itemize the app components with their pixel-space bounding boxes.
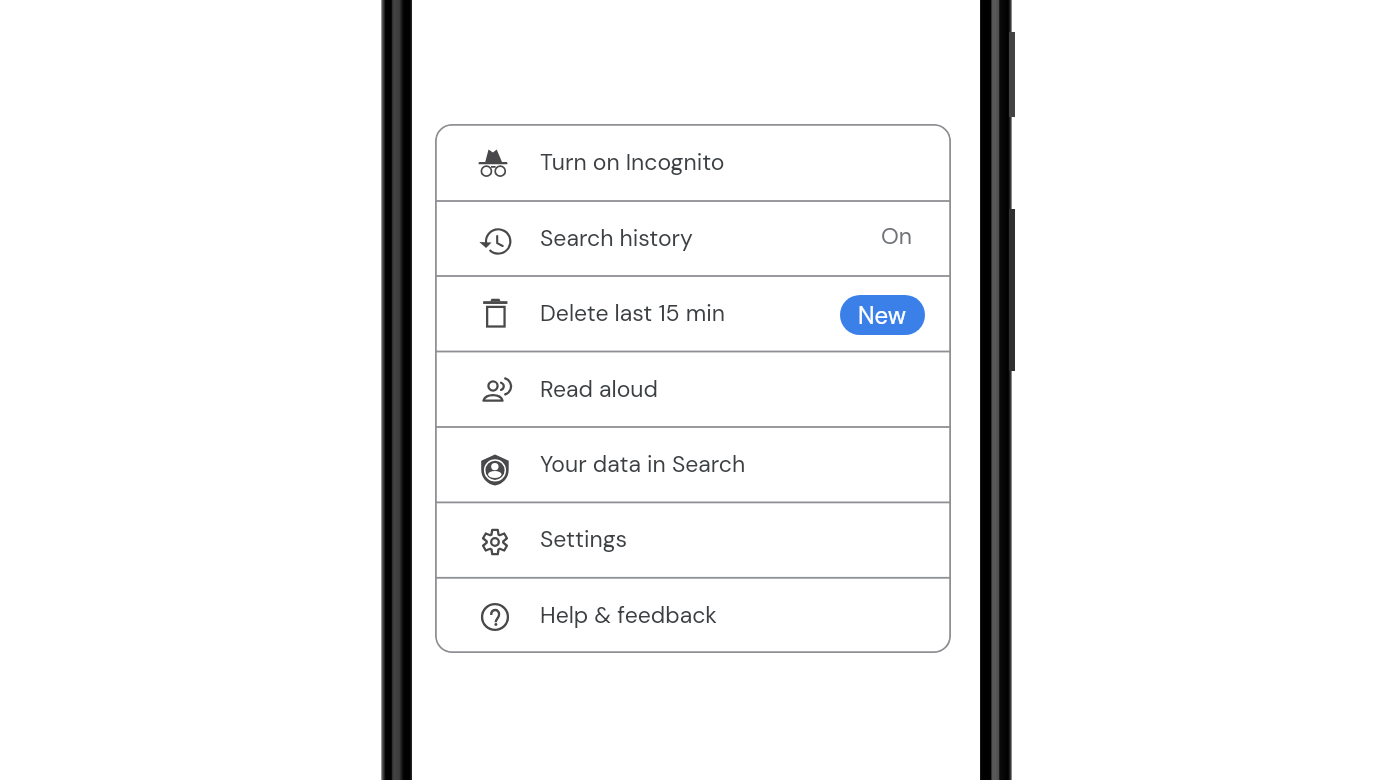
staticText: Read aloud	[540, 374, 658, 404]
button[interactable]: Read aloud	[435, 352, 951, 428]
button[interactable]: New	[840, 295, 925, 335]
button[interactable]: Delete last 15 min	[435, 276, 951, 352]
button[interactable]: Turn on Incognito	[435, 124, 951, 201]
button[interactable]: Your data in Search	[435, 427, 951, 502]
staticText: Help & feedback	[540, 600, 717, 630]
staticText: On	[881, 221, 913, 251]
button[interactable]: Search history	[435, 201, 951, 276]
staticText: Search history	[540, 223, 693, 253]
button[interactable]: Settings	[435, 502, 951, 577]
staticText: Settings	[540, 524, 628, 554]
button[interactable]: Help & feedback	[435, 578, 951, 653]
staticText: Your data in Search	[540, 449, 746, 479]
staticText: New	[858, 300, 907, 331]
staticText: Delete last 15 min	[540, 298, 725, 328]
staticText: Turn on Incognito	[540, 147, 725, 177]
